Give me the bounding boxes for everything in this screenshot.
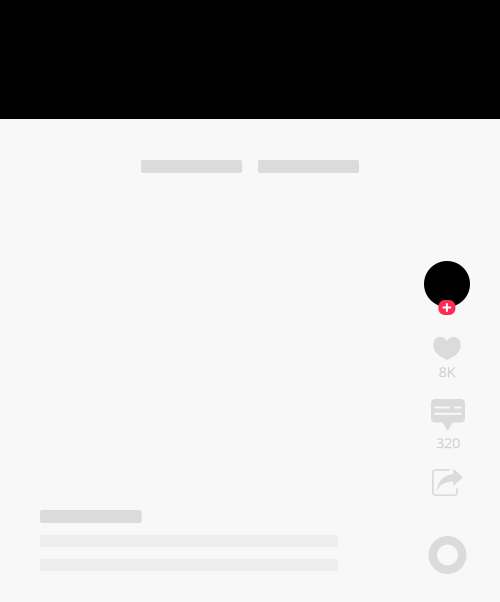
button[interactable]: Video caption, loading — [40, 510, 338, 571]
button[interactable]: Like, 8 thousand — [420, 337, 474, 378]
button[interactable]: Sound — [420, 536, 474, 574]
staticText: 320 — [436, 433, 460, 452]
staticText: 8K — [438, 362, 455, 381]
button[interactable]: Comments, 320 — [421, 399, 475, 449]
button[interactable]: Follow creator — [424, 261, 470, 315]
button[interactable]: Share — [420, 469, 474, 507]
